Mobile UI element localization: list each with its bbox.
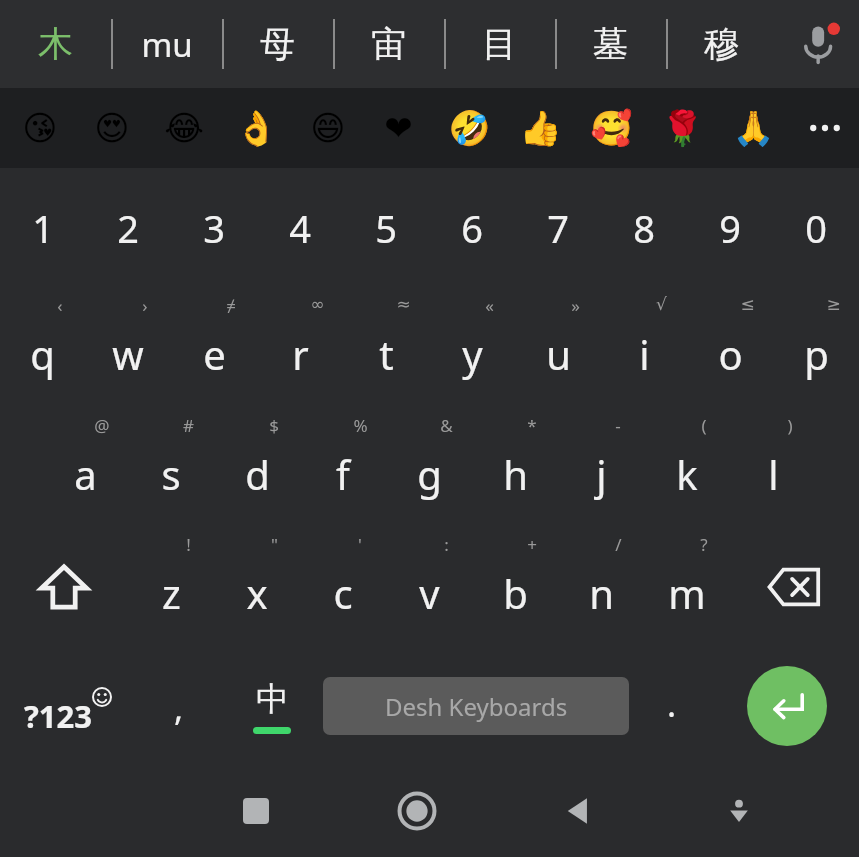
button[interactable]: s [128, 408, 214, 527]
button[interactable]: a [42, 408, 128, 527]
button[interactable]: 5 [343, 168, 429, 288]
staticText: / [615, 533, 622, 556]
button[interactable]: p [773, 288, 859, 408]
button[interactable]: 😂 [148, 88, 220, 168]
staticText: v [419, 566, 440, 620]
button[interactable]: Desh Keyboards [323, 677, 629, 735]
staticText: Desh Keyboards [385, 690, 568, 723]
button[interactable]: l [730, 408, 816, 527]
button[interactable]: c [300, 527, 386, 646]
staticText: t [379, 327, 394, 381]
button[interactable]: 6 [429, 168, 515, 288]
button[interactable]: z [128, 527, 214, 646]
staticText: - [615, 414, 621, 437]
button[interactable]: 😍 [76, 88, 148, 168]
staticText: z [162, 566, 181, 620]
button[interactable]: 🙏 [718, 88, 789, 168]
button[interactable]: 🤣 [434, 88, 505, 168]
staticText: y [462, 327, 483, 381]
staticText: ≤ [740, 294, 755, 314]
button[interactable]: 8 [601, 168, 687, 288]
button[interactable]: i [601, 288, 687, 408]
staticText: , [174, 685, 184, 731]
staticText: 3 [203, 202, 225, 254]
button[interactable]: 3 [171, 168, 257, 288]
staticText: 👌 [235, 108, 278, 148]
button[interactable]: x [214, 527, 300, 646]
staticText: 宙 [371, 22, 406, 66]
button[interactable]: b [472, 527, 558, 646]
button[interactable]: 9 [687, 168, 773, 288]
button[interactable]: ❤️ [363, 88, 434, 168]
staticText: 👍 [519, 108, 562, 148]
button[interactable]: 4 [257, 168, 343, 288]
staticText: j [596, 447, 607, 501]
staticText: @ [94, 414, 110, 437]
staticText: ?123 [24, 695, 92, 737]
button[interactable]: h [472, 408, 558, 527]
button[interactable]: Voice input [781, 0, 859, 88]
button[interactable]: 墓 [555, 0, 666, 88]
button[interactable]: k [644, 408, 730, 527]
button[interactable]: 木 [0, 0, 111, 88]
staticText: s [161, 447, 181, 501]
button[interactable]: Hide keyboard [658, 765, 819, 857]
button[interactable]: o [687, 288, 773, 408]
staticText: k [676, 447, 698, 501]
button[interactable]: g [386, 408, 472, 527]
staticText: g [417, 447, 442, 501]
button[interactable]: Shift [0, 527, 128, 646]
button[interactable]: f [300, 408, 386, 527]
button[interactable]: q [0, 288, 85, 408]
button[interactable]: , [136, 646, 221, 765]
button[interactable]: ?123 [0, 646, 136, 765]
button[interactable]: Home [336, 765, 497, 857]
staticText: 😄 [310, 108, 346, 148]
button[interactable]: Enter [747, 666, 827, 746]
staticText: ( [701, 414, 707, 437]
button[interactable]: Backspace [730, 527, 859, 646]
staticText: › [142, 294, 148, 317]
button[interactable]: 母 [222, 0, 333, 88]
button[interactable]: 中 [221, 646, 323, 765]
staticText: h [503, 447, 528, 501]
button[interactable]: Back [497, 765, 658, 857]
button[interactable]: 穆 [666, 0, 777, 88]
button[interactable]: . [629, 646, 714, 765]
button[interactable]: 0 [773, 168, 859, 288]
button[interactable]: m [644, 527, 730, 646]
button[interactable]: j [558, 408, 644, 527]
button[interactable]: r [257, 288, 343, 408]
button[interactable]: 😄 [292, 88, 363, 168]
button[interactable]: mu [111, 0, 222, 88]
button[interactable]: w [85, 288, 171, 408]
staticText: 7 [547, 202, 569, 254]
button[interactable]: 🌹 [647, 88, 718, 168]
staticText: 🥰 [590, 108, 633, 148]
staticText: n [589, 566, 614, 620]
button[interactable]: n [558, 527, 644, 646]
staticText: » [571, 294, 580, 317]
button[interactable]: 2 [85, 168, 171, 288]
button[interactable]: y [429, 288, 515, 408]
staticText: ≥ [826, 294, 841, 314]
button[interactable]: d [214, 408, 300, 527]
staticText: ' [358, 533, 362, 556]
button[interactable]: 👍 [505, 88, 576, 168]
staticText: " [271, 533, 278, 556]
button[interactable]: 宙 [333, 0, 444, 88]
staticText: 木 [38, 22, 73, 66]
button[interactable]: 😘 [4, 88, 76, 168]
button[interactable]: v [386, 527, 472, 646]
button[interactable]: u [515, 288, 601, 408]
button[interactable]: t [343, 288, 429, 408]
button[interactable]: More emoji [791, 88, 859, 168]
button[interactable]: 1 [0, 168, 85, 288]
button[interactable]: 目 [444, 0, 555, 88]
button[interactable]: e [171, 288, 257, 408]
button[interactable]: 7 [515, 168, 601, 288]
button[interactable]: 🥰 [576, 88, 647, 168]
button[interactable]: Recent apps [176, 765, 336, 857]
button[interactable]: 👌 [220, 88, 292, 168]
staticText: √ [656, 294, 667, 314]
